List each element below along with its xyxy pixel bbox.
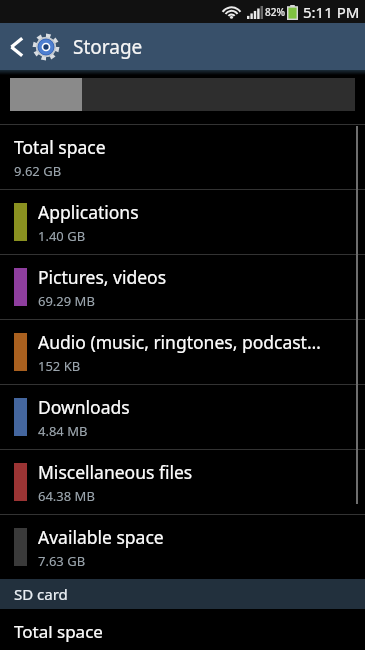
staticText: Miscellaneous files <box>38 460 193 484</box>
staticText: Total space <box>14 135 106 159</box>
button[interactable]: Available space <box>0 515 365 579</box>
staticText: 69.29 MB <box>38 292 95 310</box>
staticText: 7.63 GB <box>38 552 86 570</box>
staticText: 5:11 PM <box>303 2 360 22</box>
staticText: SD card <box>14 584 68 604</box>
button[interactable]: Audio (music, ringtones, podcast… <box>0 320 365 384</box>
button[interactable]: Pictures, videos <box>0 255 365 319</box>
button[interactable]: Navigate up <box>0 23 64 70</box>
staticText: Audio (music, ringtones, podcast… <box>38 330 321 354</box>
staticText: Downloads <box>38 395 130 419</box>
staticText: 1.40 GB <box>38 227 86 245</box>
button[interactable]: Miscellaneous files <box>0 450 365 514</box>
staticText: Available space <box>38 525 164 549</box>
button[interactable]: Total space <box>0 125 365 189</box>
staticText: Total space <box>14 620 103 643</box>
button[interactable]: Applications <box>0 190 365 254</box>
staticText: Pictures, videos <box>38 265 167 289</box>
staticText: 4.84 MB <box>38 422 88 440</box>
staticText: 82% <box>265 5 285 19</box>
staticText: Storage <box>73 34 143 60</box>
staticText: Applications <box>38 200 139 224</box>
button[interactable]: Total space <box>0 609 365 649</box>
staticText: 152 KB <box>38 357 81 375</box>
button[interactable]: Downloads <box>0 385 365 449</box>
staticText: 9.62 GB <box>14 162 62 180</box>
staticText: 64.38 MB <box>38 487 95 505</box>
